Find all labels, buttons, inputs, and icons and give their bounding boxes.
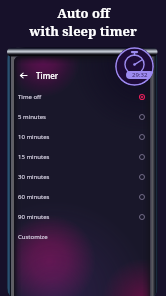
staticText: Customize: [18, 233, 48, 241]
staticText: 60 minutes: [18, 193, 50, 201]
button[interactable]: Back: [16, 68, 30, 82]
button[interactable]: 15 minutes: [14, 147, 150, 167]
button[interactable]: Time off: [14, 87, 150, 107]
staticText: 10 minutes: [18, 133, 50, 141]
button[interactable]: 10 minutes: [14, 127, 150, 147]
staticText: 29:32: [132, 71, 148, 79]
button[interactable]: Customize: [14, 227, 150, 247]
button[interactable]: 90 minutes: [14, 207, 150, 227]
staticText: 90 minutes: [18, 213, 50, 221]
button[interactable]: 5 minutes: [14, 107, 150, 127]
staticText: with sleep timer: [29, 22, 137, 40]
staticText: Time off: [18, 93, 42, 101]
staticText: 5 minutes: [18, 113, 46, 121]
button[interactable]: 30 minutes: [14, 167, 150, 187]
button[interactable]: Sleep timer 29:32: [115, 47, 154, 86]
staticText: Auto off: [57, 4, 110, 22]
staticText: 30 minutes: [18, 173, 50, 181]
staticText: 15 minutes: [18, 153, 50, 161]
staticText: Timer: [36, 70, 59, 81]
button[interactable]: 60 minutes: [14, 187, 150, 207]
